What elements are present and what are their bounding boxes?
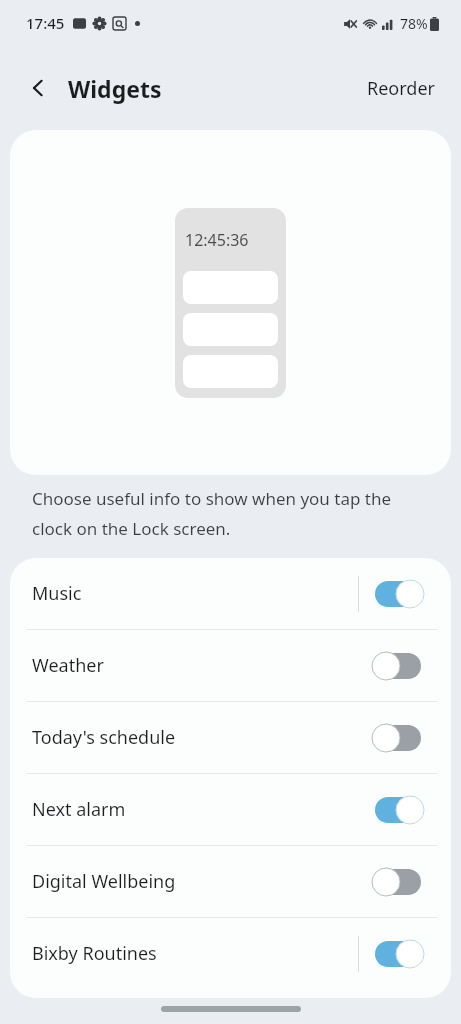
button[interactable]: Today's schedule: [10, 702, 451, 773]
button[interactable]: Weather: [10, 630, 451, 701]
staticText: Music: [32, 581, 82, 606]
button[interactable]: Toggle on: [375, 795, 427, 825]
staticText: Choose useful info to show when you tap …: [32, 487, 392, 510]
staticText: Bixby Routines: [32, 941, 157, 966]
staticText: 17:45: [26, 13, 65, 33]
staticText: Today's schedule: [32, 725, 176, 750]
button[interactable]: Back: [22, 72, 54, 104]
staticText: Widgets: [68, 73, 162, 104]
button[interactable]: Music: [10, 558, 451, 629]
button[interactable]: Toggle off: [375, 867, 427, 897]
staticText: 12:45:36: [185, 229, 249, 251]
button[interactable]: Next alarm: [10, 774, 451, 845]
button[interactable]: Toggle off: [375, 651, 427, 681]
staticText: 78%: [400, 14, 428, 33]
staticText: Reorder: [367, 76, 435, 101]
staticText: Digital Wellbeing: [32, 869, 176, 894]
button[interactable]: Toggle off: [375, 723, 427, 753]
staticText: Weather: [32, 653, 104, 678]
staticText: Next alarm: [32, 797, 126, 822]
button[interactable]: Digital Wellbeing: [10, 846, 451, 917]
button[interactable]: Toggle on: [375, 939, 427, 969]
button[interactable]: Bixby Routines: [10, 918, 451, 989]
button[interactable]: Reorder: [357, 68, 445, 109]
button[interactable]: Toggle on: [375, 579, 427, 609]
staticText: clock on the Lock screen.: [32, 517, 231, 540]
